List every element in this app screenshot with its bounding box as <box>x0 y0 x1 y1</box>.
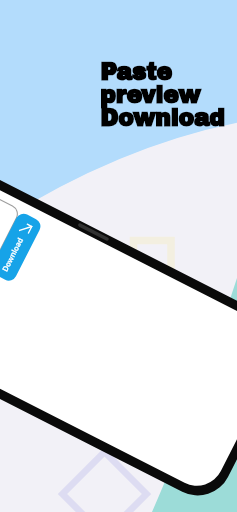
staticText: Paste preview Download <box>100 60 225 131</box>
